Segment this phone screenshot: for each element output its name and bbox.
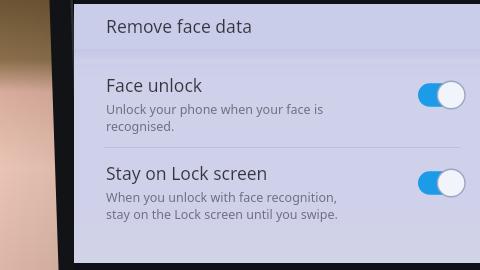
staticText: Remove face data: [106, 14, 253, 38]
button[interactable]: Face unlock: [74, 63, 480, 147]
staticText: recognised.: [106, 118, 175, 135]
button[interactable]: Face unlock toggle, on: [418, 80, 466, 110]
staticText: Face unlock: [106, 73, 203, 97]
staticText: stay on the Lock screen until you swipe.: [106, 206, 338, 223]
button[interactable]: Stay on Lock screen toggle, on: [418, 168, 466, 198]
button[interactable]: Stay on Lock screen: [74, 148, 480, 227]
staticText: When you unlock with face recognition,: [106, 189, 338, 206]
staticText: Stay on Lock screen: [106, 161, 268, 185]
button[interactable]: Remove face data: [74, 4, 480, 49]
staticText: Unlock your phone when your face is: [106, 101, 324, 118]
